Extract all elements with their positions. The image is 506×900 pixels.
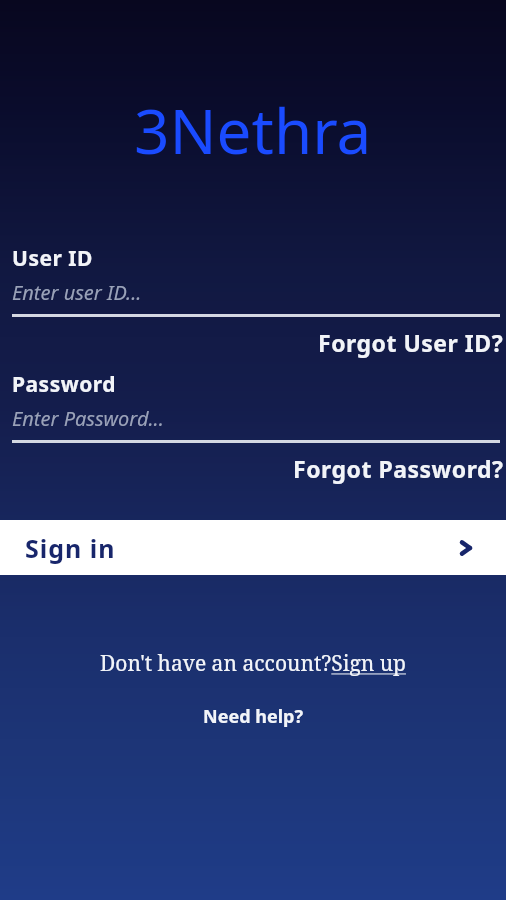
button[interactable]: Sign in: [0, 520, 506, 575]
staticText: Forgot User ID?: [318, 327, 504, 358]
button[interactable]: Need help?: [0, 704, 506, 729]
staticText: Sign in: [25, 531, 116, 565]
button[interactable]: Password: [0, 370, 506, 443]
staticText: Enter user ID...: [12, 279, 142, 306]
staticText: Don't have an account?Sign up: [100, 649, 406, 678]
button[interactable]: Don't have an account?Sign up: [0, 649, 506, 678]
staticText: Enter Password...: [12, 405, 164, 432]
staticText: 3Nethra: [134, 88, 372, 172]
staticText: Need help?: [203, 704, 303, 729]
staticText: Password: [12, 370, 117, 399]
button[interactable]: User ID: [0, 244, 506, 317]
button[interactable]: Forgot User ID?: [0, 327, 506, 358]
staticText: User ID: [12, 244, 93, 273]
staticText: Forgot Password?: [293, 453, 504, 484]
button[interactable]: Forgot Password?: [0, 453, 506, 484]
